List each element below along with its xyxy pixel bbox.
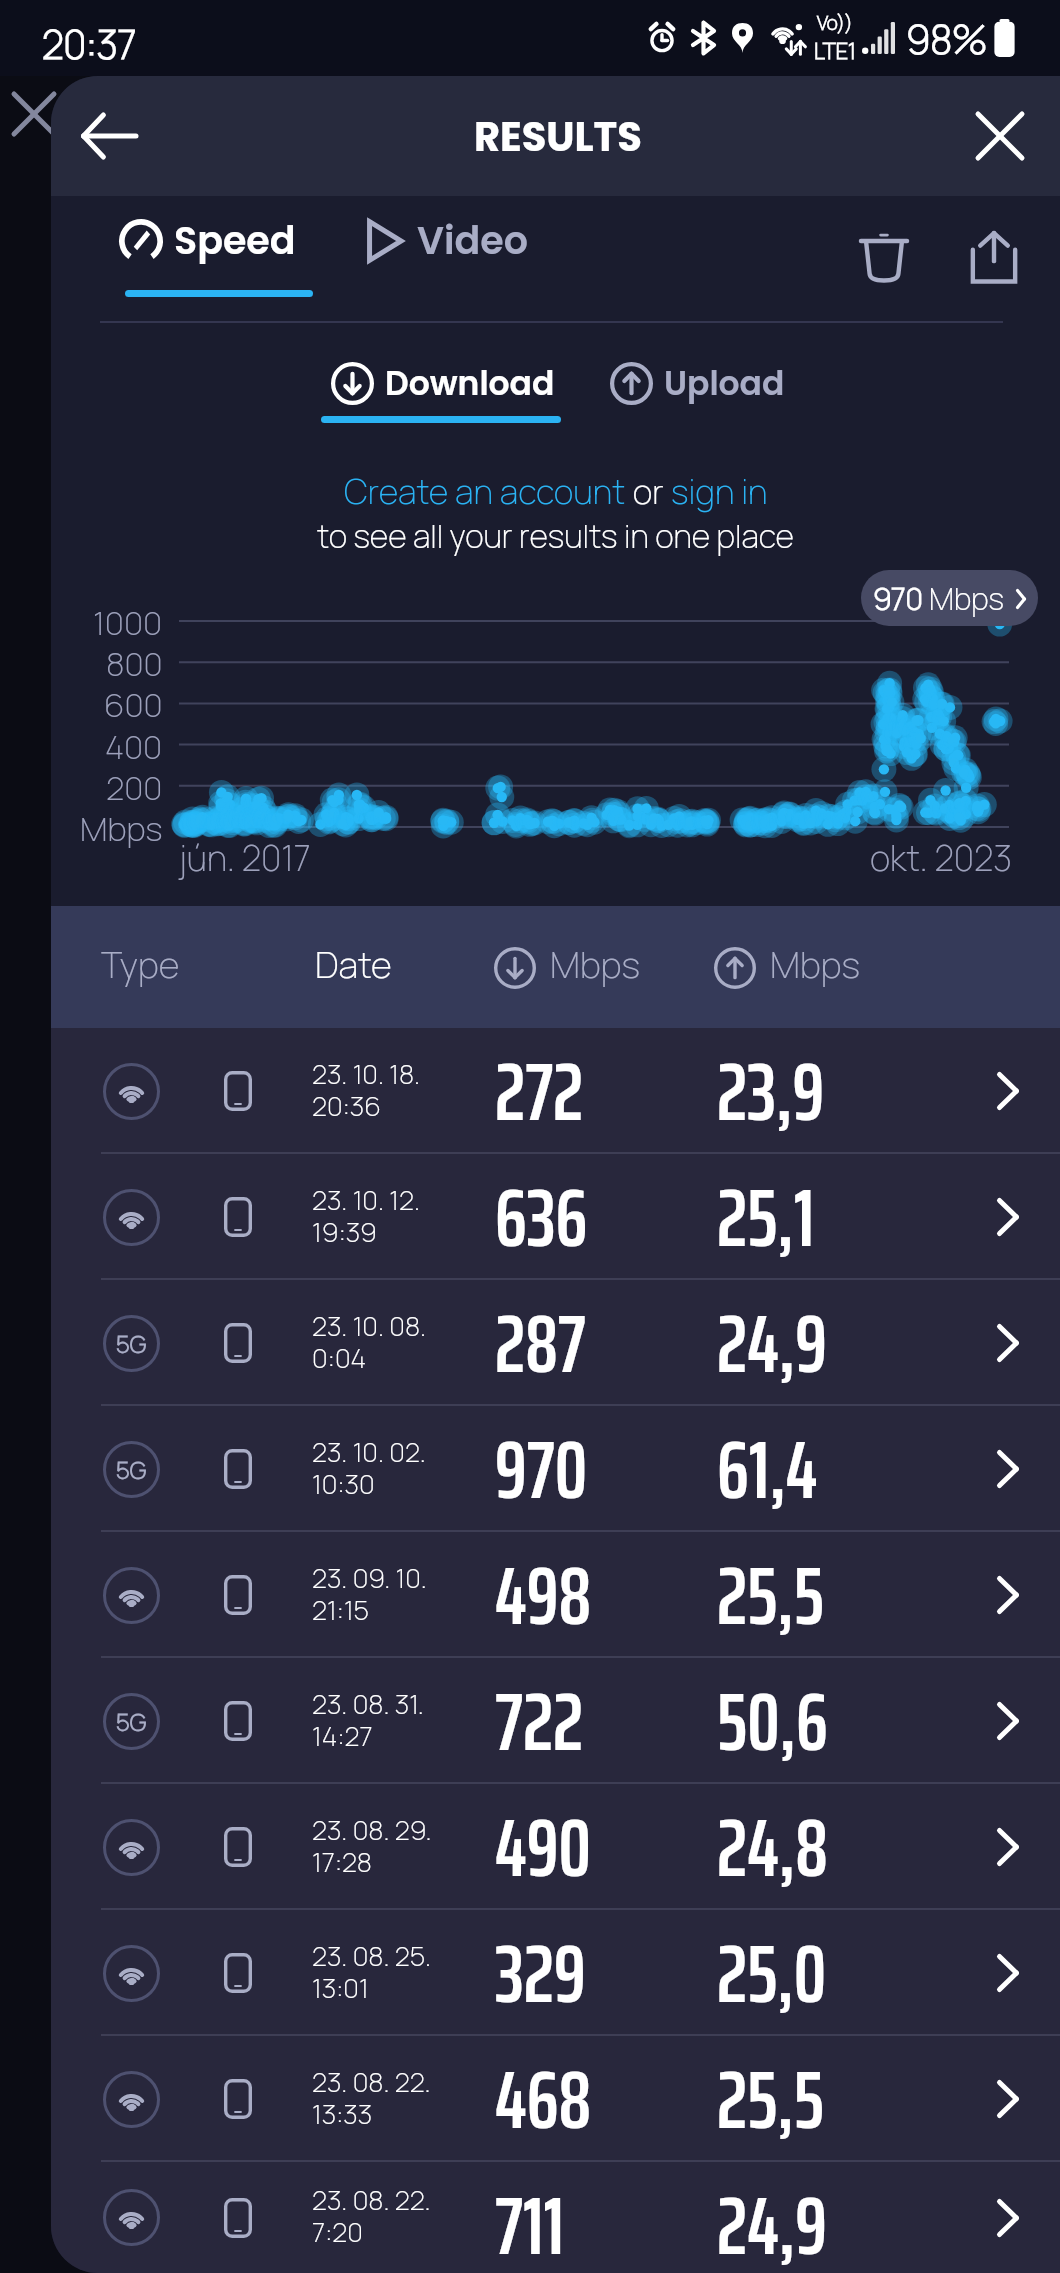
staticText: 711 [495, 2162, 565, 2273]
button[interactable]: 23. 10. 12. 19:39 [51, 1154, 1060, 1280]
staticText: 970 [873, 578, 923, 619]
staticText: Video [417, 214, 529, 267]
staticText: 24,9 [717, 1280, 827, 1406]
button[interactable]: 23. 08. 29. 17:28 [51, 1784, 1060, 1910]
staticText: 23. 10. 18. 20:36 [312, 1055, 420, 1124]
staticText: okt. 2023 [870, 834, 1013, 882]
staticText: 98% [906, 12, 988, 65]
staticText: Mbps [80, 806, 163, 848]
staticText: 23. 10. 12. 19:39 [312, 1181, 420, 1250]
staticText: Speed [174, 214, 296, 267]
staticText: 25,0 [717, 1910, 827, 2036]
staticText: Mbps [923, 578, 1004, 619]
staticText: 600 [104, 682, 163, 724]
staticText: 287 [495, 1280, 586, 1406]
staticText: 23. 08. 22. 13:33 [312, 2063, 431, 2132]
button[interactable]: Create an account [344, 468, 626, 514]
button[interactable]: Video [365, 214, 529, 267]
button[interactable]: Close [954, 90, 1046, 182]
button[interactable]: Download [331, 360, 555, 406]
staticText: 1000 [93, 600, 163, 642]
staticText: jún. 2017 [179, 834, 311, 882]
staticText: 25,1 [717, 1154, 815, 1280]
staticText: 498 [495, 1532, 592, 1658]
staticText: Mbps [550, 940, 640, 989]
button[interactable]: Upload [610, 360, 785, 406]
staticText: 200 [106, 765, 163, 807]
staticText: 20:37 [42, 17, 137, 70]
staticText: 23. 08. 25. 13:01 [312, 1937, 432, 2006]
button[interactable]: 5G [51, 1280, 1060, 1406]
button[interactable]: 23. 09. 10. 21:15 [51, 1532, 1060, 1658]
button[interactable]: 23. 08. 22. 13:33 [51, 2036, 1060, 2162]
button[interactable]: sign in [671, 468, 768, 514]
button[interactable]: 970 [861, 570, 1038, 626]
staticText: 23. 10. 08. 0:04 [312, 1307, 426, 1376]
staticText: 272 [495, 1028, 584, 1154]
staticText: 23. 08. 31. 14:27 [312, 1685, 424, 1754]
staticText: 25,5 [717, 1532, 824, 1658]
staticText: RESULTS [474, 109, 642, 165]
button[interactable]: 5G [51, 1658, 1060, 1784]
staticText: 636 [495, 1154, 588, 1280]
staticText: 5G [116, 1705, 147, 1738]
staticText: 329 [495, 1910, 586, 2036]
staticText: 5G [116, 1327, 147, 1360]
button[interactable]: Delete [838, 209, 930, 301]
staticText: 23. 08. 29. 17:28 [312, 1811, 432, 1880]
staticText: 970 [495, 1406, 588, 1532]
button[interactable]: Back [63, 90, 155, 182]
staticText: Date [315, 940, 392, 989]
staticText: 23. 09. 10. 21:15 [312, 1559, 427, 1628]
staticText: 50,6 [717, 1658, 828, 1784]
staticText: Download [385, 360, 555, 406]
staticText: 722 [495, 1658, 584, 1784]
staticText: 24,9 [717, 2162, 827, 2273]
staticText: 23,9 [717, 1028, 825, 1154]
button[interactable]: Speed [119, 214, 296, 267]
staticText: or [626, 468, 671, 514]
staticText: 24,8 [717, 1784, 828, 1910]
staticText: 490 [495, 1784, 591, 1910]
staticText: to see all your results in one place [317, 514, 794, 558]
staticText: 23. 08. 22. 7:20 [312, 2181, 431, 2250]
staticText: LTE1 [814, 36, 856, 66]
staticText: 23. 10. 02. 10:30 [312, 1433, 426, 1502]
button[interactable]: 23. 08. 25. 13:01 [51, 1910, 1060, 2036]
staticText: 61,4 [717, 1406, 818, 1532]
button[interactable]: 5G [51, 1406, 1060, 1532]
button[interactable]: 23. 10. 18. 20:36 [51, 1028, 1060, 1154]
button[interactable]: Share [948, 211, 1040, 303]
staticText: 800 [106, 641, 163, 683]
staticText: Type [101, 940, 180, 989]
button[interactable]: 23. 08. 22. 7:20 [51, 2162, 1060, 2273]
staticText: 400 [105, 724, 163, 766]
staticText: 25,5 [717, 2036, 824, 2162]
staticText: Mbps [770, 940, 860, 989]
staticText: 468 [495, 2036, 592, 2162]
staticText: Vo)) [817, 10, 853, 36]
staticText: Upload [664, 360, 785, 406]
staticText: 5G [116, 1453, 147, 1486]
